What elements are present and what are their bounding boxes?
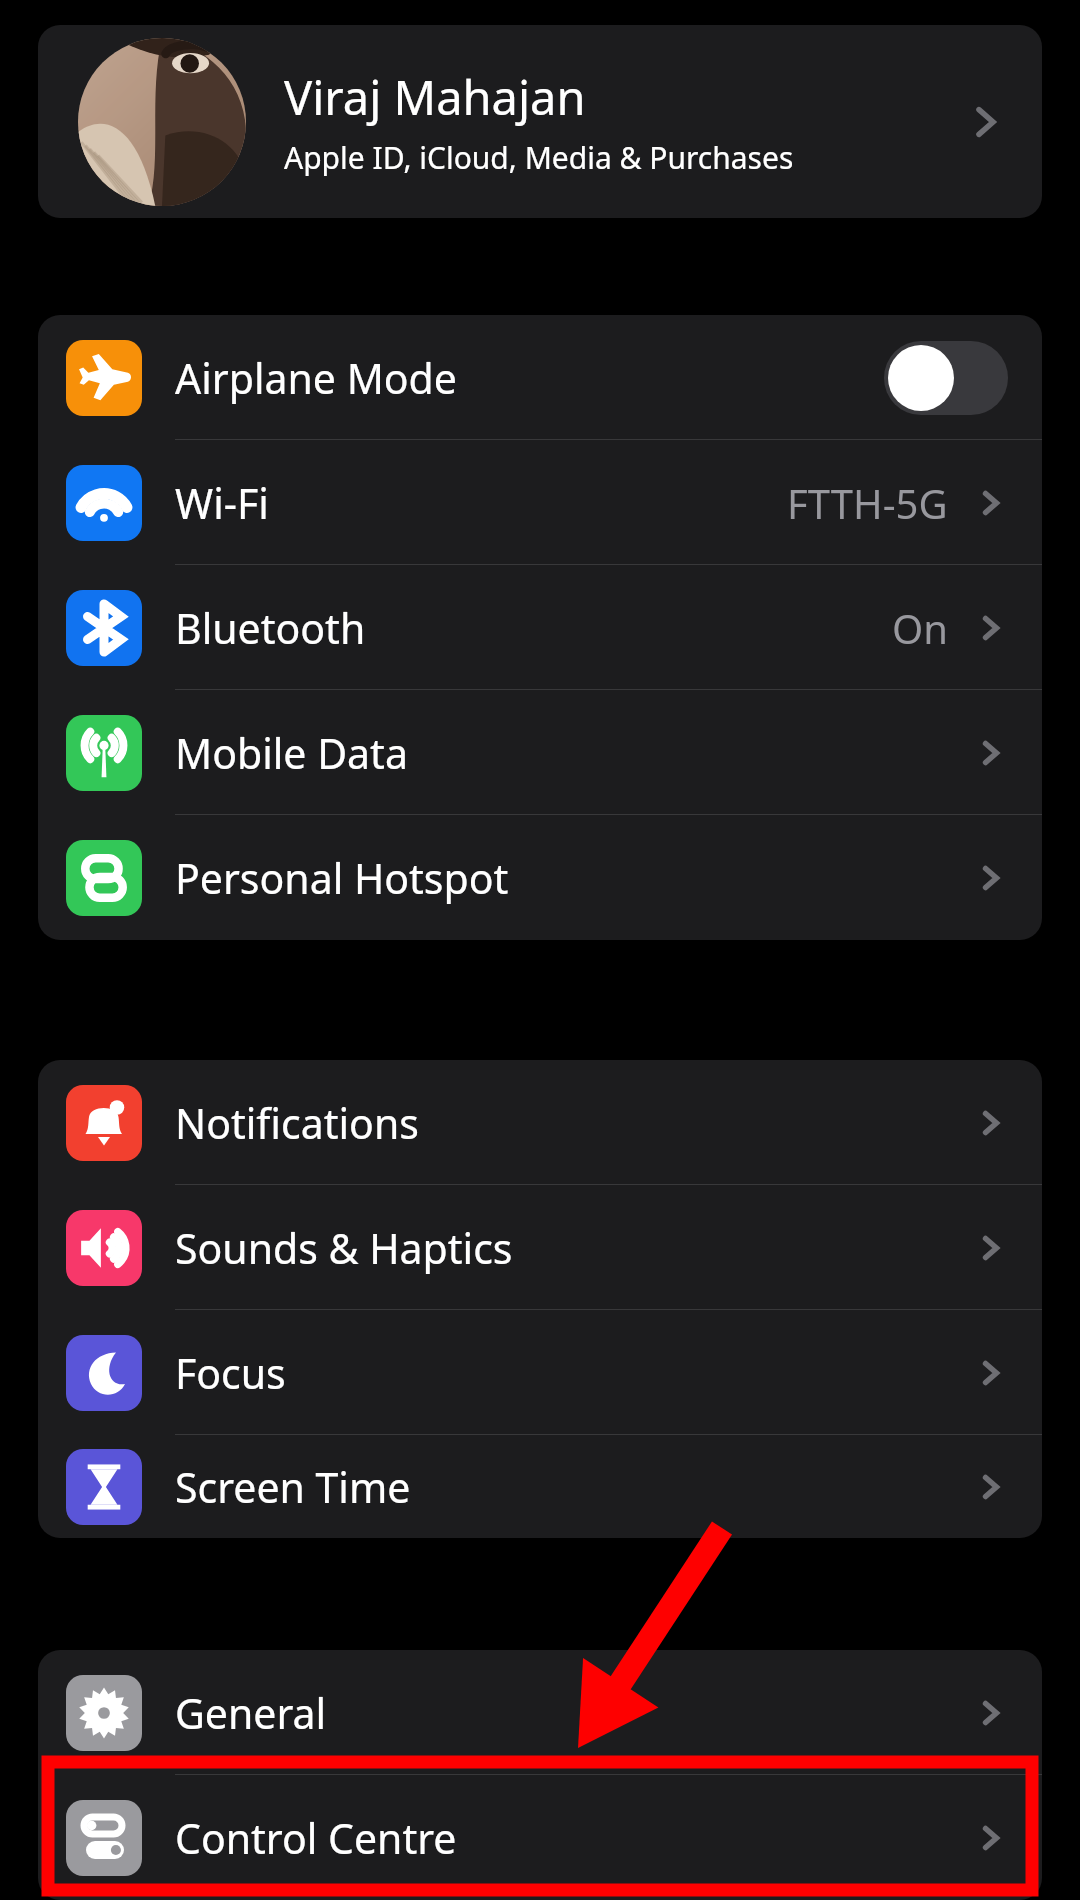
staticText: Control Centre — [175, 1810, 457, 1866]
staticText: Personal Hotspot — [175, 850, 509, 906]
button[interactable]: Viraj Mahajan — [38, 25, 1042, 218]
staticText: Viraj Mahajan — [284, 65, 586, 129]
button[interactable]: Airplane Mode — [38, 315, 1042, 440]
button[interactable]: Sounds & Haptics — [38, 1185, 1042, 1310]
button[interactable]: Wi-Fi — [38, 440, 1042, 565]
staticText: Screen Time — [175, 1459, 411, 1515]
staticText: Focus — [175, 1345, 286, 1401]
other: Open Apple ID — [964, 100, 1008, 144]
button[interactable]: Airplane Mode toggle — [884, 341, 1008, 415]
button[interactable]: Screen Time — [38, 1435, 1042, 1538]
button[interactable]: Focus — [38, 1310, 1042, 1435]
staticText: Bluetooth — [175, 600, 366, 656]
staticText: Wi-Fi — [175, 475, 269, 531]
button[interactable]: Bluetooth — [38, 565, 1042, 690]
button[interactable]: Mobile Data — [38, 690, 1042, 815]
staticText: FTTH-5G — [787, 476, 948, 530]
staticText: On — [892, 601, 948, 655]
staticText: Airplane Mode — [175, 350, 457, 406]
staticText: Sounds & Haptics — [175, 1220, 513, 1276]
button[interactable]: Control Centre — [38, 1775, 1042, 1900]
staticText: Apple ID, iCloud, Media & Purchases — [284, 137, 794, 178]
button[interactable]: Personal Hotspot — [38, 815, 1042, 940]
button[interactable]: General — [38, 1650, 1042, 1775]
staticText: General — [175, 1685, 327, 1741]
button[interactable]: Notifications — [38, 1060, 1042, 1185]
staticText: Mobile Data — [175, 725, 408, 781]
staticText: Notifications — [175, 1095, 419, 1151]
